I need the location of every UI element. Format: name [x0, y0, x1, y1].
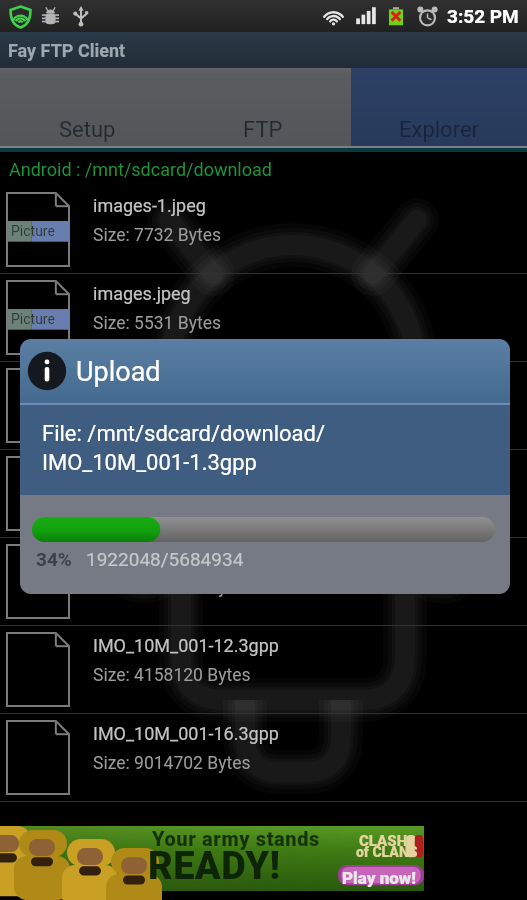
staticText: Size: 3158120 Bytes [93, 577, 251, 598]
staticText: IMO_10M_001-1.3gpp [93, 371, 269, 392]
staticText: Size: 5684934 Bytes [93, 401, 251, 422]
button[interactable]: Picture [0, 274, 527, 362]
staticText: Explorer [399, 117, 480, 143]
staticText: of CLANS [356, 844, 418, 860]
staticText: Play now! [342, 868, 416, 888]
staticText: images.jpeg [93, 283, 191, 304]
staticText: images-1.jpeg [93, 195, 206, 216]
staticText: Picture [11, 311, 55, 327]
staticText: Size: 4158120 Bytes [93, 665, 251, 686]
staticText: Size: 9014702 Bytes [93, 753, 251, 774]
staticText: Your army stands [152, 827, 320, 850]
staticText: Android : /mnt/sdcard/download [9, 159, 272, 180]
staticText: IMO_10M_001-10.3gpp [93, 459, 279, 480]
staticText: READY! [148, 844, 281, 889]
staticText: CLASH [359, 832, 408, 850]
staticText: Size: 7732 Bytes [93, 225, 221, 246]
button[interactable]: Explorer [351, 68, 527, 146]
button[interactable]: IMO_10M_001-11.3gpp [0, 538, 527, 626]
staticText: 1922048/5684934 [86, 548, 244, 570]
button[interactable]: FTP [175, 68, 351, 146]
staticText: Upload [76, 356, 161, 388]
button[interactable]: Setup [0, 68, 175, 146]
staticText: Setup [59, 117, 116, 143]
button[interactable]: IMO_10M_001-12.3gpp [0, 626, 527, 714]
staticText: 34% [36, 548, 72, 570]
staticText: File: /mnt/sdcard/download/ [42, 421, 326, 447]
button[interactable]: Picture [0, 186, 527, 274]
staticText: Picture [11, 223, 55, 239]
staticText: Fay FTP Client [8, 40, 126, 61]
button[interactable]: IMO_10M_001-10.3gpp [0, 450, 527, 538]
staticText: IMO_10M_001-11.3gpp [93, 547, 279, 568]
staticText: IMO_10M_001-1.3gpp [42, 450, 257, 476]
staticText: 3:52 PM [447, 5, 519, 27]
staticText: Size: 5531 Bytes [93, 313, 221, 334]
staticText: IMO_10M_001-16.3gpp [93, 723, 279, 744]
button[interactable]: Advertisement [4, 826, 424, 891]
staticText: IMO_10M_001-12.3gpp [93, 635, 279, 656]
staticText: FTP [243, 117, 283, 143]
staticText: Size: 4158120 Bytes [93, 489, 251, 510]
button[interactable]: IMO_10M_001-1.3gpp [0, 362, 527, 450]
button[interactable]: IMO_10M_001-16.3gpp [0, 714, 527, 802]
